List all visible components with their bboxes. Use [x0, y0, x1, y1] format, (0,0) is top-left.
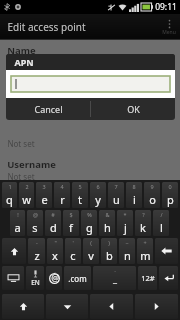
button[interactable]: Voice input EN: [26, 266, 44, 290]
button[interactable]: *: [117, 210, 133, 236]
button[interactable]: ': [65, 238, 81, 264]
button[interactable]: 5: [72, 182, 88, 208]
staticText: y: [95, 192, 101, 207]
staticText: %: [87, 211, 92, 218]
staticText: 1: [8, 183, 12, 190]
button[interactable]: ?: [135, 210, 151, 236]
staticText: 4: [60, 183, 64, 190]
button[interactable]: !: [10, 210, 25, 236]
staticText: b: [106, 248, 113, 263]
button[interactable]: 4: [54, 182, 70, 208]
button[interactable]: Menu: [158, 14, 180, 40]
staticText: 5: [78, 183, 82, 190]
staticText: ): [108, 239, 110, 246]
staticText: Username: [7, 158, 56, 171]
button[interactable]: ": [47, 238, 63, 264]
staticText: OK: [127, 103, 140, 115]
button[interactable]: -: [28, 238, 45, 264]
staticText: t: [78, 192, 82, 207]
staticText: .: [114, 266, 116, 274]
staticText: EN: [31, 278, 40, 287]
staticText: f: [69, 220, 73, 235]
button[interactable]: 8: [126, 182, 142, 208]
staticText: u: [113, 192, 120, 207]
staticText: Cancel: [34, 103, 63, 115]
button[interactable]: 7: [108, 182, 124, 208]
staticText: v: [88, 248, 94, 263]
staticText: g: [86, 220, 93, 235]
staticText: ": [54, 239, 57, 246]
staticText: 2: [25, 183, 29, 190]
staticText: h: [104, 220, 111, 235]
button[interactable]: Enter: [159, 266, 178, 290]
button[interactable]: +: [137, 238, 153, 264]
button[interactable]: Keyboard settings: [2, 266, 24, 290]
staticText: APN: [14, 56, 34, 68]
button[interactable]: Right: [135, 294, 178, 319]
staticText: 09:11: [155, 1, 177, 13]
staticText: 8: [132, 183, 136, 190]
button[interactable]: @: [27, 210, 43, 236]
button[interactable]: Left: [90, 294, 133, 319]
button[interactable]: 9: [144, 182, 160, 208]
staticText: @: [33, 211, 38, 218]
button[interactable]: 1: [2, 182, 17, 208]
staticText: _: [113, 272, 117, 284]
button[interactable]: #: [45, 210, 61, 236]
button[interactable]: %: [81, 210, 97, 236]
staticText: m: [140, 248, 151, 263]
staticText: Name: [7, 44, 36, 57]
staticText: w: [22, 192, 31, 207]
button[interactable]: (: [83, 238, 99, 264]
button[interactable]: 0: [162, 182, 178, 208]
staticText: l: [160, 220, 163, 235]
button[interactable]: At sign: [46, 266, 62, 290]
staticText: 0: [168, 183, 172, 190]
staticText: /: [160, 211, 163, 218]
staticText: p: [167, 192, 174, 207]
staticText: ': [72, 239, 74, 246]
staticText: x: [52, 248, 58, 263]
staticText: Menu: [162, 29, 176, 36]
button[interactable]: 3: [36, 182, 52, 208]
staticText: 7: [114, 183, 118, 190]
staticText: 3: [42, 183, 46, 190]
staticText: Not set: [7, 171, 35, 180]
staticText: -: [36, 239, 38, 246]
staticText: o: [149, 192, 156, 207]
button[interactable]: ~: [119, 238, 135, 264]
staticText: a: [14, 220, 21, 235]
staticText: ?: [142, 211, 145, 218]
staticText: .com: [68, 273, 87, 284]
button[interactable]: 12#: [138, 266, 157, 290]
staticText: !: [17, 211, 19, 218]
button[interactable]: .: [93, 266, 136, 290]
staticText: q: [6, 192, 13, 207]
staticText: Edit access point: [7, 20, 86, 34]
button[interactable]: &: [99, 210, 115, 236]
button[interactable]: Cancel: [6, 98, 90, 120]
staticText: 12#: [141, 273, 155, 283]
button[interactable]: Backspace: [155, 238, 178, 264]
button[interactable]: $: [63, 210, 79, 236]
staticText: c: [70, 248, 76, 263]
button[interactable]: /: [153, 210, 169, 236]
staticText: Not set: [7, 138, 35, 149]
button[interactable]: ): [101, 238, 117, 264]
staticText: 9: [150, 183, 154, 190]
staticText: d: [50, 220, 57, 235]
button[interactable]: 6: [90, 182, 106, 208]
staticText: j: [124, 220, 127, 235]
staticText: $: [69, 211, 73, 218]
button[interactable]: OK: [91, 98, 175, 120]
button[interactable]: Shift: [2, 238, 26, 264]
staticText: ~: [125, 239, 129, 246]
button[interactable]: .com: [64, 266, 91, 290]
button[interactable]: [11, 76, 170, 92]
button[interactable]: 2: [19, 182, 34, 208]
staticText: +: [143, 239, 147, 246]
button[interactable]: Down: [46, 294, 88, 319]
staticText: &: [105, 211, 110, 218]
staticText: z: [34, 248, 40, 263]
button[interactable]: Up: [2, 294, 44, 319]
